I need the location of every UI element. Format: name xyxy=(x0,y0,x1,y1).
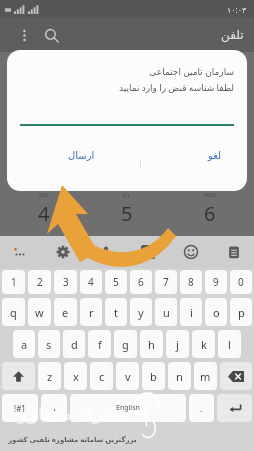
button[interactable]: 0 xyxy=(230,270,252,294)
staticText: بزرگترین سامانه مشاوره تلفنی کشور xyxy=(8,435,137,445)
button[interactable]: u xyxy=(155,298,177,326)
staticText: ۱۰:۰۳ xyxy=(227,4,247,15)
button[interactable]: b xyxy=(142,362,165,390)
button[interactable]: JKL xyxy=(101,192,153,227)
staticText: لغو xyxy=(208,150,222,162)
staticText: 9 xyxy=(213,275,219,289)
button[interactable]: p xyxy=(230,298,252,326)
button[interactable]: c xyxy=(90,362,113,390)
button[interactable]: a xyxy=(13,330,35,358)
button[interactable]: 2 xyxy=(28,270,51,294)
button[interactable]: ، xyxy=(41,394,67,422)
button[interactable]: h xyxy=(140,330,163,358)
staticText: d xyxy=(71,337,78,352)
button[interactable]: ارسال xyxy=(59,144,103,168)
button[interactable]: MNO xyxy=(184,192,236,227)
button[interactable]: i xyxy=(180,298,202,326)
staticText: e xyxy=(62,305,69,320)
button[interactable]: s xyxy=(38,330,60,358)
staticText: 0 xyxy=(238,275,244,289)
button[interactable]: f xyxy=(88,330,111,358)
staticText: r xyxy=(89,305,94,320)
button[interactable]: o xyxy=(205,298,227,326)
staticText: n xyxy=(176,369,183,384)
staticText: 6 xyxy=(204,200,216,227)
staticText: ، xyxy=(53,403,56,413)
staticText: c xyxy=(99,369,105,384)
staticText: 5 xyxy=(121,200,133,227)
button[interactable]: n xyxy=(168,362,191,390)
staticText: GHI xyxy=(39,192,49,199)
button[interactable]: g xyxy=(114,330,137,358)
button[interactable]: Voice input xyxy=(94,240,118,264)
button[interactable]: 6 xyxy=(130,270,152,294)
button[interactable]: y xyxy=(130,298,152,326)
button[interactable]: 8 xyxy=(180,270,202,294)
staticText: JKL xyxy=(123,192,131,199)
staticText: a xyxy=(21,337,28,352)
button[interactable]: t xyxy=(105,298,127,326)
button[interactable]: Settings xyxy=(51,240,75,264)
staticText: u xyxy=(163,305,170,320)
button[interactable]: Enter xyxy=(217,394,252,422)
button[interactable]: 4 xyxy=(80,270,102,294)
button[interactable]: d xyxy=(63,330,85,358)
button[interactable]: j xyxy=(166,330,189,358)
button[interactable]: m xyxy=(194,362,217,390)
button[interactable]: English xyxy=(70,394,186,422)
staticText: z xyxy=(47,369,53,384)
staticText: g xyxy=(122,337,129,352)
button[interactable]: 7 xyxy=(155,270,177,294)
staticText: 7 xyxy=(163,275,169,289)
button[interactable]: 1 xyxy=(2,270,25,294)
staticText: 3 xyxy=(63,275,69,289)
staticText: p xyxy=(238,305,245,320)
staticText: . xyxy=(200,402,203,414)
button[interactable]: Shift xyxy=(2,362,35,390)
button[interactable]: 9 xyxy=(205,270,227,294)
staticText: x xyxy=(73,369,79,384)
button[interactable]: لغو xyxy=(193,144,237,168)
staticText: v xyxy=(125,369,131,384)
button[interactable]: Toolbar xyxy=(8,240,32,264)
staticText: لطفا شناسه قبض را وارد نمایید xyxy=(7,81,234,93)
staticText: w xyxy=(35,305,44,320)
button[interactable]: x xyxy=(64,362,87,390)
staticText: English xyxy=(116,403,140,413)
staticText: 1 xyxy=(11,275,17,289)
button[interactable]: Clipboard xyxy=(222,240,246,264)
staticText: m xyxy=(200,369,211,384)
staticText: 4 xyxy=(38,200,50,227)
button[interactable]: . xyxy=(189,394,214,422)
button[interactable]: !#1 xyxy=(2,394,38,422)
staticText: !#1 xyxy=(14,403,26,414)
staticText: l xyxy=(228,337,231,352)
staticText: k xyxy=(201,337,207,352)
staticText: MNO xyxy=(204,192,217,199)
staticText: 2 xyxy=(37,275,43,289)
staticText: y xyxy=(138,305,144,320)
button[interactable]: w xyxy=(28,298,51,326)
button[interactable]: More options xyxy=(12,23,36,47)
staticText: i xyxy=(190,305,193,320)
button[interactable]: q xyxy=(2,298,25,326)
button[interactable]: GHI xyxy=(18,192,70,227)
staticText: f xyxy=(98,337,102,352)
button[interactable]: 5 xyxy=(105,270,127,294)
button[interactable]: l xyxy=(218,330,241,358)
button[interactable]: e xyxy=(54,298,77,326)
button[interactable]: Backspace xyxy=(220,362,252,390)
button[interactable]: r xyxy=(80,298,102,326)
button[interactable]: 3 xyxy=(54,270,77,294)
button[interactable]: v xyxy=(116,362,139,390)
staticText: همراه مشاور xyxy=(18,402,127,425)
button[interactable]: Emoji xyxy=(179,240,203,264)
button[interactable]: Stickers xyxy=(136,240,160,264)
staticText: 6 xyxy=(138,275,144,289)
button[interactable]: Search xyxy=(38,22,64,48)
staticText: j xyxy=(176,337,179,352)
button[interactable]: k xyxy=(192,330,215,358)
staticText: ارسال xyxy=(68,150,95,162)
button[interactable]: z xyxy=(38,362,61,390)
staticText: h xyxy=(148,337,155,352)
